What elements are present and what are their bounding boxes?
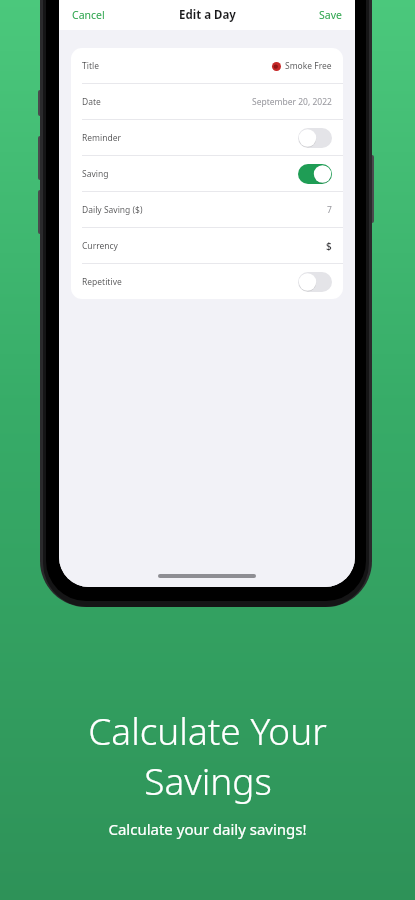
staticText: $ [326,239,332,253]
staticText: Edit a Day [179,7,236,23]
staticText: 7 [327,204,332,216]
button[interactable]: Date [71,84,343,119]
staticText: Savings [144,755,272,805]
staticText: Saving [82,168,109,180]
button[interactable]: Daily Saving ($) [71,192,343,227]
button[interactable]: Repetitive [71,264,343,299]
staticText: Date [82,96,101,108]
staticText: Title [82,60,99,72]
button[interactable]: Save [306,3,355,27]
staticText: September 20, 2022 [252,96,332,108]
button[interactable]: Currency [71,228,343,263]
button[interactable]: Toggle off [298,128,332,148]
staticText: Calculate your daily savings! [108,819,307,839]
staticText: Daily Saving ($) [82,204,143,216]
button[interactable]: Saving [71,156,343,191]
staticText: Currency [82,240,118,252]
staticText: Reminder [82,132,122,144]
button[interactable]: Toggle off [298,272,332,292]
staticText: Cancel [72,8,105,22]
button[interactable]: Toggle on [298,164,332,184]
button[interactable]: Cancel [59,3,118,27]
staticText: Calculate Your [88,705,327,755]
button[interactable]: Title [71,48,343,83]
button[interactable]: Reminder [71,120,343,155]
staticText: Repetitive [82,276,122,288]
staticText: Smoke Free [285,60,332,72]
staticText: Save [319,8,342,22]
